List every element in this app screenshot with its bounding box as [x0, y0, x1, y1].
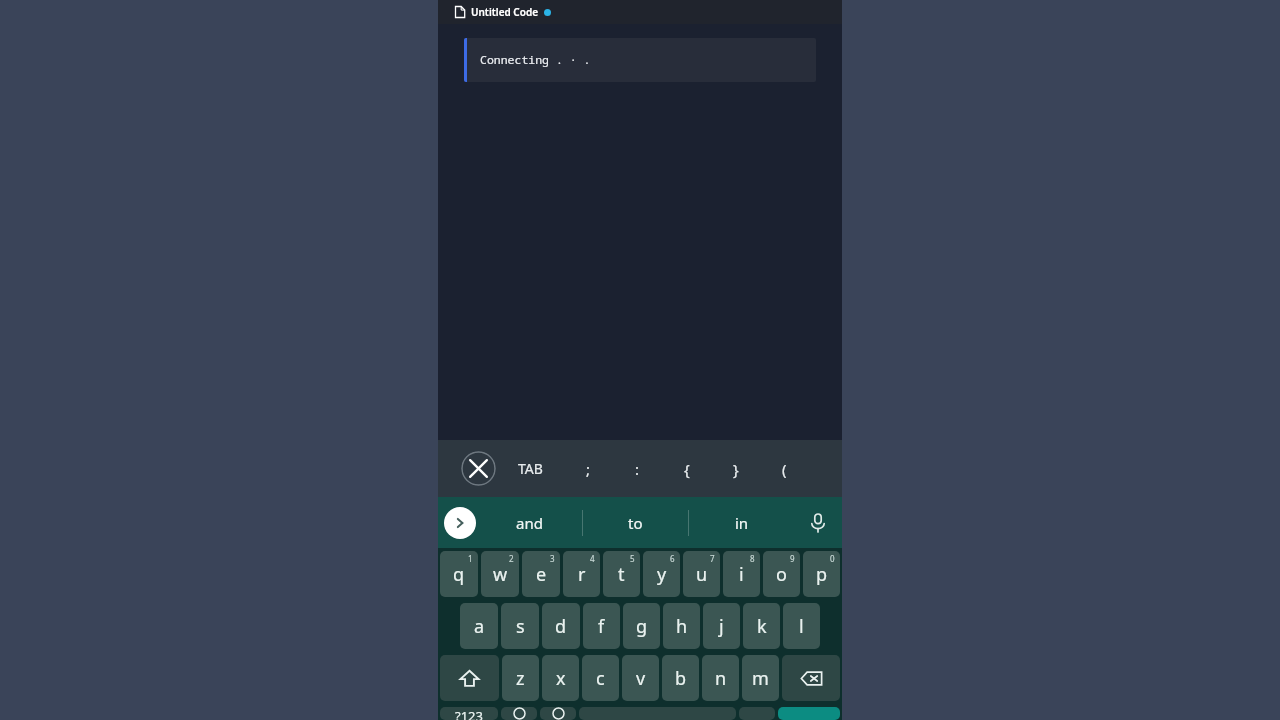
staticText: }	[733, 459, 739, 479]
staticText: n	[715, 666, 727, 691]
button[interactable]: h	[663, 603, 700, 649]
staticText: 2	[509, 553, 514, 564]
staticText: t	[618, 562, 625, 587]
staticText: in	[735, 513, 749, 533]
staticText: y	[657, 562, 667, 587]
staticText: x	[556, 666, 566, 691]
staticText: TAB	[518, 459, 543, 478]
button[interactable]: r	[563, 551, 600, 597]
button[interactable]: Space	[579, 707, 736, 720]
staticText: ?123	[455, 707, 483, 720]
staticText: 1	[468, 553, 473, 564]
button[interactable]: j	[703, 603, 740, 649]
staticText: e	[536, 562, 547, 587]
staticText: 8	[750, 553, 755, 564]
staticText: p	[816, 562, 828, 587]
button[interactable]: z	[502, 655, 539, 701]
button[interactable]: m	[742, 655, 779, 701]
button[interactable]: i	[723, 551, 760, 597]
staticText: 6	[670, 553, 675, 564]
staticText: :	[635, 459, 640, 479]
staticText: j	[719, 614, 724, 639]
staticText: h	[676, 614, 688, 639]
staticText: m	[752, 666, 769, 691]
button[interactable]: f	[583, 603, 620, 649]
button[interactable]: k	[743, 603, 780, 649]
staticText: l	[799, 614, 804, 639]
button[interactable]: TAB	[496, 440, 564, 497]
button[interactable]: v	[622, 655, 659, 701]
button[interactable]: (	[760, 440, 809, 497]
button[interactable]: u	[683, 551, 720, 597]
button[interactable]: p	[803, 551, 840, 597]
button[interactable]: Connecting . · .	[464, 38, 816, 82]
staticText: Connecting . · .	[480, 52, 591, 68]
staticText: v	[636, 666, 646, 691]
staticText: q	[453, 562, 465, 587]
button[interactable]: q	[440, 551, 478, 597]
button[interactable]: Expand suggestions	[444, 507, 476, 539]
staticText: w	[493, 562, 508, 587]
staticText: a	[474, 614, 485, 639]
staticText: 4	[590, 553, 595, 564]
staticText: (	[782, 459, 787, 479]
button[interactable]: l	[783, 603, 820, 649]
button[interactable]: o	[763, 551, 800, 597]
button[interactable]: t	[603, 551, 640, 597]
staticText: to	[628, 513, 643, 533]
staticText: 9	[790, 553, 795, 564]
button[interactable]: Switch language	[540, 707, 576, 720]
button[interactable]: Enter	[778, 707, 840, 720]
staticText: 3	[550, 553, 555, 564]
button[interactable]: Emoji	[501, 707, 537, 720]
staticText: 0	[830, 553, 835, 564]
button[interactable]: }	[711, 440, 760, 497]
button[interactable]: a	[460, 603, 498, 649]
button[interactable]: Shift	[440, 655, 499, 701]
staticText: ;	[586, 459, 591, 479]
button[interactable]: w	[481, 551, 519, 597]
button[interactable]: e	[522, 551, 560, 597]
button[interactable]: b	[662, 655, 699, 701]
staticText: Untitled Code	[471, 5, 538, 19]
button[interactable]: ;	[564, 440, 613, 497]
button[interactable]: and	[476, 497, 582, 548]
button[interactable]: Close symbol bar	[461, 451, 496, 486]
staticText: k	[757, 614, 767, 639]
staticText: d	[555, 614, 567, 639]
staticText: c	[596, 666, 605, 691]
button[interactable]: {	[662, 440, 711, 497]
button[interactable]: in	[689, 497, 794, 548]
button[interactable]: .	[739, 707, 775, 720]
button[interactable]: c	[582, 655, 619, 701]
staticText: r	[578, 562, 586, 587]
button[interactable]: x	[542, 655, 579, 701]
staticText: b	[675, 666, 687, 691]
staticText: o	[776, 562, 787, 587]
staticText: 5	[630, 553, 635, 564]
button[interactable]: n	[702, 655, 739, 701]
staticText: 7	[710, 553, 715, 564]
staticText: s	[516, 614, 525, 639]
staticText: z	[516, 666, 525, 691]
button[interactable]: y	[643, 551, 680, 597]
button[interactable]: :	[613, 440, 662, 497]
staticText: and	[516, 513, 543, 533]
staticText: g	[636, 614, 648, 639]
staticText: u	[696, 562, 708, 587]
button[interactable]: to	[583, 497, 688, 548]
staticText: i	[739, 562, 744, 587]
button[interactable]: s	[501, 603, 539, 649]
button[interactable]: g	[623, 603, 660, 649]
button[interactable]: d	[542, 603, 580, 649]
button[interactable]: Backspace	[782, 655, 840, 701]
staticText: {	[684, 459, 690, 479]
staticText: f	[598, 614, 605, 639]
button[interactable]: Voice input	[794, 497, 842, 548]
button[interactable]: ?123	[440, 707, 498, 720]
